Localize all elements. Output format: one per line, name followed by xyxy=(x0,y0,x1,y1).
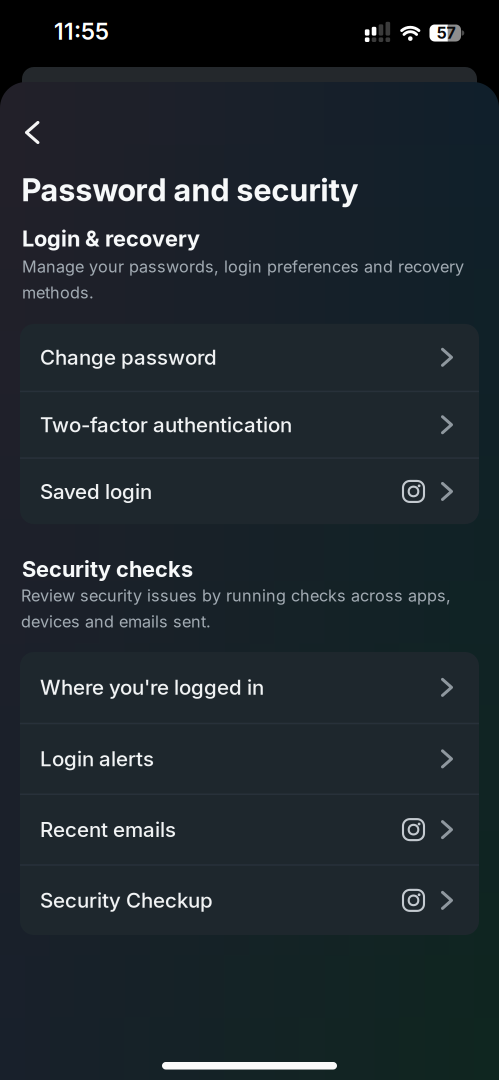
staticText: devices and emails sent. xyxy=(21,612,211,631)
staticText: Manage your passwords, login preferences… xyxy=(22,257,464,276)
staticText: Login alerts xyxy=(40,746,154,771)
staticText: Where you're logged in xyxy=(40,675,264,700)
button[interactable]: Back xyxy=(24,120,40,144)
staticText: Change password xyxy=(40,345,217,370)
button[interactable]: Recent emails xyxy=(20,795,479,864)
staticText: Security Checkup xyxy=(40,888,213,913)
button[interactable]: Saved login xyxy=(20,459,479,524)
button[interactable]: Change password xyxy=(20,324,479,391)
staticText: Security checks xyxy=(22,556,193,582)
button[interactable]: Login alerts xyxy=(20,724,479,793)
staticText: Review security issues by running checks… xyxy=(21,586,451,605)
staticText: 11:55 xyxy=(54,18,109,45)
staticText: methods. xyxy=(22,283,94,302)
staticText: Two-factor authentication xyxy=(40,412,292,437)
staticText: Password and security xyxy=(21,171,358,209)
staticText: Recent emails xyxy=(40,817,176,842)
staticText: Login & recovery xyxy=(22,225,200,252)
button[interactable]: Two-factor authentication xyxy=(20,392,479,457)
staticText: 57 xyxy=(436,23,455,43)
button[interactable]: Security Checkup xyxy=(20,866,479,935)
button[interactable]: Where you're logged in xyxy=(20,652,479,723)
staticText: Saved login xyxy=(40,479,152,504)
